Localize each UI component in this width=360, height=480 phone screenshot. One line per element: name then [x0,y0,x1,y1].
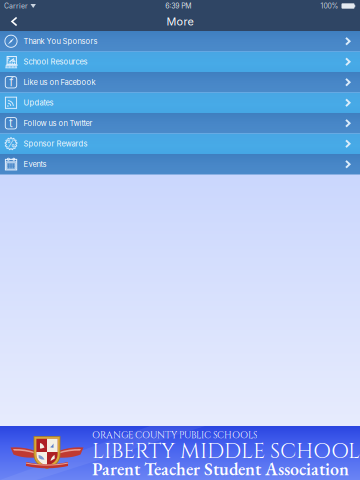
staticText: f [9,75,13,89]
staticText: Carrier [4,2,28,10]
button[interactable]: Thank You Sponsors [0,31,360,51]
staticText: ORANGE COUNTY PUBLIC SCHOOLS [92,429,257,442]
button[interactable]: t [0,113,360,133]
button[interactable]: Events [0,154,360,174]
button[interactable]: f [0,72,360,92]
staticText: Parent Teacher Student Association [92,457,349,480]
button[interactable]: % [0,133,360,154]
staticText: 6:39 PM [165,2,191,10]
staticText: Events [23,160,46,169]
staticText: Like us on Facebook [23,78,95,87]
button[interactable]: School Resources [0,51,360,72]
button[interactable]: Updates [0,92,360,113]
staticText: School Resources [23,57,87,66]
staticText: Thank You Sponsors [23,37,97,46]
staticText: t [9,116,13,130]
button[interactable]: Back [0,13,27,30]
staticText: % [6,138,15,149]
staticText: LIBERTY MIDDLE SCHOOL [92,437,360,466]
staticText: 100% [320,2,338,10]
staticText: Sponsor Rewards [23,139,87,148]
staticText: Updates [23,98,53,107]
staticText: More [166,15,193,28]
staticText: Follow us on Twitter [23,119,92,128]
